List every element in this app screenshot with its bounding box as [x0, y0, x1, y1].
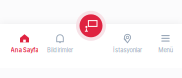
- button[interactable]: Duyuru Ekle: [76, 11, 106, 41]
- button[interactable]: Ana Sayfa: [7, 30, 41, 56]
- staticText: İstasyonlar: [113, 47, 142, 54]
- button[interactable]: Menü: [148, 30, 182, 56]
- staticText: Menü: [158, 47, 173, 54]
- staticText: Bildirimler: [47, 47, 73, 54]
- button[interactable]: Bildirimler: [43, 30, 77, 56]
- staticText: Ana Sayfa: [10, 47, 38, 54]
- button[interactable]: İstasyonlar: [110, 30, 144, 56]
